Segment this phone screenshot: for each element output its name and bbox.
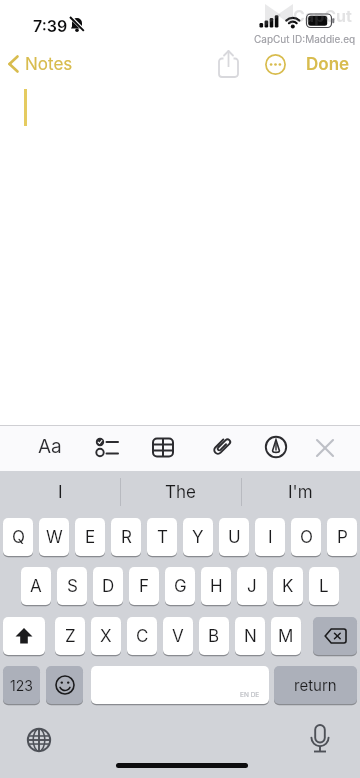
button[interactable]: W [39,518,69,556]
button[interactable]: Done [302,50,356,78]
staticText: Notes [25,54,73,75]
button[interactable] [263,434,289,460]
staticText: H [210,576,223,597]
button[interactable]: S [57,567,87,605]
staticText: Z [65,626,76,647]
button[interactable]: G [165,567,195,605]
staticText: O [300,527,313,548]
button[interactable] [314,437,336,459]
button[interactable]: R [111,518,141,556]
staticText: I [58,482,63,503]
button[interactable] [3,617,45,655]
button[interactable] [214,48,244,80]
staticText: P [337,527,348,548]
staticText: CapCut ID:Maddie.eq [254,33,356,45]
button[interactable]: I [0,473,120,511]
staticText: M [278,626,294,647]
staticText: R [121,527,132,548]
staticText: U [228,527,241,548]
staticText: Q [12,527,25,548]
button[interactable] [263,52,288,77]
staticText: The [165,482,196,503]
staticText: N [244,626,257,647]
button[interactable]: Notes [4,50,79,78]
button[interactable]: A [21,567,51,605]
button[interactable]: U [219,518,249,556]
staticText: J [247,576,257,597]
button[interactable]: C [127,617,157,655]
button[interactable]: V [163,617,193,655]
staticText: 7:39 [33,16,68,35]
staticText: S [67,576,78,597]
staticText: return [294,676,337,694]
button[interactable]: L [309,567,339,605]
staticText: T [157,527,168,548]
button[interactable]: J [237,567,267,605]
button[interactable]: T [147,518,177,556]
button[interactable]: D [93,567,123,605]
staticText: G [174,576,187,597]
staticText: I [268,527,273,548]
staticText: E [85,527,96,548]
button[interactable]: I'm [240,473,360,511]
staticText: V [172,626,184,647]
staticText: C [136,626,149,647]
button[interactable]: 123 [3,666,40,704]
staticText: Done [306,54,350,75]
button[interactable] [91,666,269,704]
button[interactable] [46,666,83,704]
staticText: B [208,626,220,647]
staticText: D [102,576,115,597]
staticText: W [46,527,63,548]
button[interactable]: P [327,518,357,556]
staticText: Y [192,527,204,548]
button[interactable] [20,721,58,759]
button[interactable] [313,617,357,655]
staticText: F [139,576,150,597]
staticText: Aa [38,435,62,458]
button[interactable] [207,433,235,461]
button[interactable]: return [274,666,357,704]
button[interactable]: H [201,567,231,605]
button[interactable]: F [129,567,159,605]
button[interactable] [150,435,178,460]
button[interactable]: Q [3,518,33,556]
staticText: 123 [10,677,33,694]
button[interactable] [92,432,122,462]
button[interactable]: B [199,617,229,655]
staticText: I'm [288,482,313,503]
staticText: K [282,576,294,597]
button[interactable]: I [255,518,285,556]
button[interactable]: O [291,518,321,556]
button[interactable]: N [235,617,265,655]
button[interactable]: M [271,617,301,655]
staticText: L [319,576,329,597]
button[interactable] [303,720,337,758]
staticText: CapCut [293,6,352,25]
button[interactable]: E [75,518,105,556]
staticText: X [100,626,112,647]
staticText: EN DE [240,691,260,699]
button[interactable]: Aa [34,431,66,461]
button[interactable]: The [120,473,240,511]
button[interactable]: K [273,567,303,605]
button[interactable]: Y [183,518,213,556]
button[interactable]: Z [55,617,85,655]
staticText: A [30,576,42,597]
button[interactable]: X [91,617,121,655]
